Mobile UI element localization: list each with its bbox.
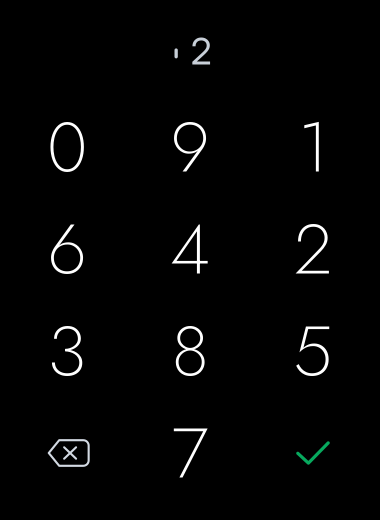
staticText: 1 — [298, 96, 328, 198]
staticText: 6 — [47, 198, 86, 300]
button[interactable]: 8 — [128, 300, 251, 402]
button[interactable]: 9 — [128, 96, 251, 198]
button[interactable]: 7 — [128, 402, 251, 504]
button[interactable]: 1 — [251, 96, 374, 198]
staticText: 9 — [170, 96, 209, 198]
staticText: 2 — [294, 198, 332, 300]
button[interactable]: Confirm — [251, 402, 374, 504]
button[interactable]: 2 — [251, 198, 374, 300]
staticText: 3 — [47, 300, 86, 402]
staticText: 7 — [171, 402, 208, 504]
staticText: 8 — [171, 300, 208, 402]
staticText: 5 — [293, 300, 333, 402]
button[interactable]: Delete — [5, 402, 128, 504]
button[interactable]: 5 — [251, 300, 374, 402]
button[interactable]: 0 — [5, 96, 128, 198]
staticText: 4 — [170, 198, 210, 300]
staticText: 2 — [190, 28, 211, 74]
button[interactable]: 6 — [5, 198, 128, 300]
button[interactable]: 3 — [5, 300, 128, 402]
staticText: 0 — [47, 96, 87, 198]
button[interactable]: 4 — [128, 198, 251, 300]
